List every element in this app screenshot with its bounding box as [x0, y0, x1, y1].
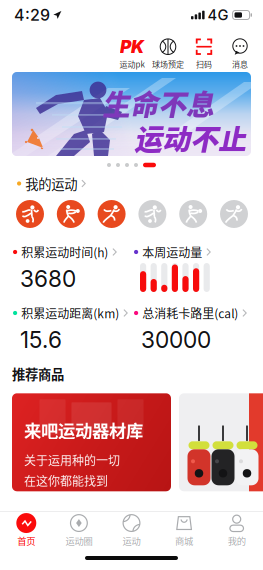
- staticText: 消息: [232, 58, 248, 70]
- button[interactable]: 积累运动时间(h): [13, 246, 134, 307]
- staticText: 扫码: [196, 58, 212, 70]
- staticText: 4G: [208, 6, 229, 24]
- button[interactable]: 积累运动距离(km): [13, 307, 134, 368]
- button[interactable]: Sport: [16, 200, 44, 228]
- staticText: 运动圈: [65, 534, 92, 547]
- button[interactable]: 球场预定: [150, 32, 186, 70]
- button[interactable]: 消息: [222, 32, 258, 70]
- button[interactable]: 首页: [0, 508, 53, 547]
- staticText: 运动pk: [119, 58, 144, 70]
- staticText: PK: [120, 36, 144, 57]
- button[interactable]: 生命不息: [12, 72, 251, 156]
- staticText: 30000: [141, 326, 211, 353]
- button[interactable]: 运动: [105, 508, 158, 547]
- button[interactable]: 扫码: [186, 32, 222, 70]
- button[interactable]: 来吧运动器材库: [12, 393, 171, 491]
- staticText: 总消耗卡路里(cal): [142, 304, 238, 322]
- staticText: 我的运动: [25, 174, 77, 193]
- button[interactable]: Sport: [179, 200, 207, 228]
- staticText: 积累运动时间(h): [21, 243, 108, 261]
- button[interactable]: PK: [114, 32, 150, 70]
- staticText: 在这你都能找到: [24, 472, 108, 489]
- staticText: 商城: [175, 534, 193, 547]
- button[interactable]: 总消耗卡路里(cal): [134, 307, 255, 368]
- staticText: 3680: [20, 265, 76, 292]
- staticText: 本周运动量: [142, 243, 202, 261]
- button[interactable]: Sport: [57, 200, 85, 228]
- button[interactable]: 我的: [210, 508, 263, 547]
- staticText: 15.6: [20, 326, 62, 353]
- staticText: 首页: [17, 534, 35, 547]
- staticText: 积累运动距离(km): [21, 304, 119, 322]
- staticText: 生命不息: [102, 83, 214, 123]
- staticText: 推荐商品: [12, 364, 64, 383]
- staticText: 球场预定: [152, 58, 184, 70]
- button[interactable]: [179, 393, 263, 491]
- button[interactable]: Sport: [138, 200, 166, 228]
- staticText: 来吧运动器材库: [24, 417, 143, 442]
- staticText: 关于运用种的一切: [24, 451, 120, 469]
- staticText: 运动不止: [134, 117, 246, 158]
- staticText: 运动: [122, 534, 140, 547]
- button[interactable]: Sport: [220, 200, 248, 228]
- button[interactable]: 本周运动量: [134, 246, 255, 307]
- button[interactable]: Sport: [98, 200, 126, 228]
- staticText: 4:29: [14, 5, 50, 25]
- button[interactable]: 运动圈: [53, 508, 105, 547]
- staticText: 我的: [228, 534, 246, 547]
- button[interactable]: 商城: [158, 508, 210, 547]
